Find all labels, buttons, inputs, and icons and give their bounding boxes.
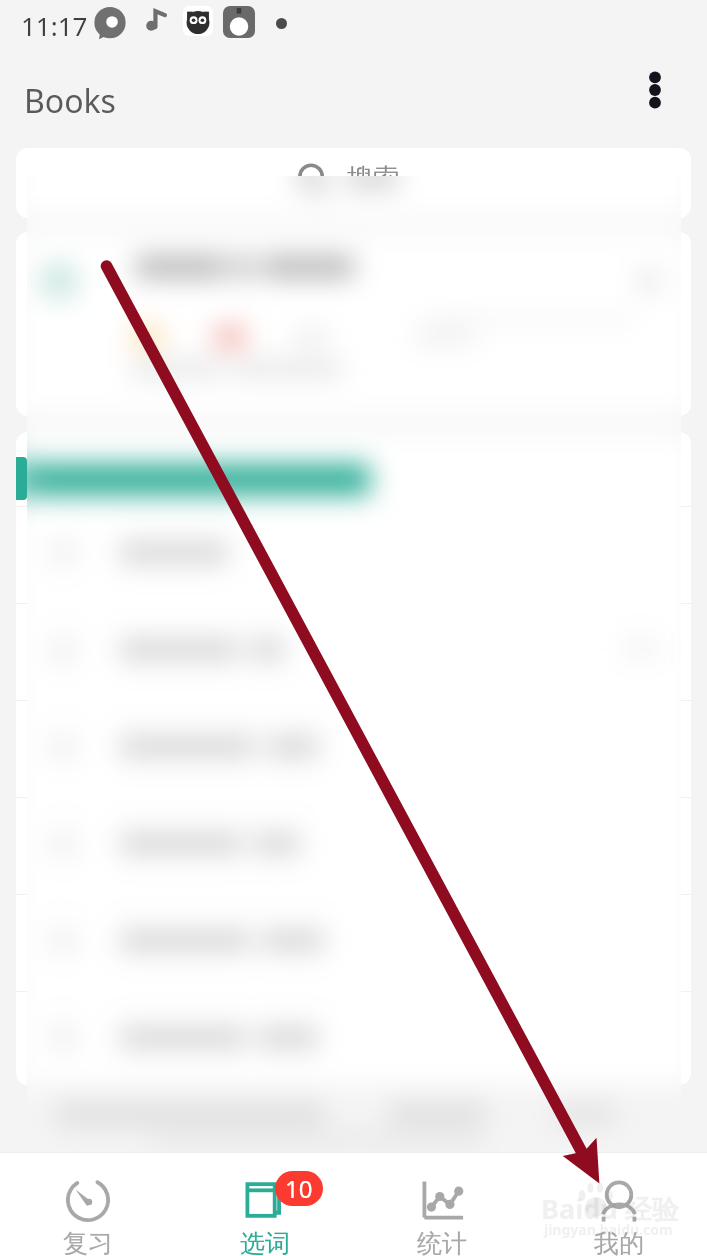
button[interactable] xyxy=(16,507,691,603)
staticText: Books xyxy=(24,79,116,123)
button[interactable]: 复习 xyxy=(0,1152,176,1256)
staticText: 10 xyxy=(285,1172,313,1205)
button[interactable]: 统计 xyxy=(353,1152,530,1256)
button[interactable] xyxy=(16,604,691,700)
staticText: 我的 xyxy=(594,1228,644,1256)
staticText: Baidu 经验 xyxy=(541,1190,679,1227)
button[interactable] xyxy=(16,992,691,1085)
button[interactable] xyxy=(16,798,691,894)
staticText: 11:17 xyxy=(21,8,88,43)
button[interactable]: More options xyxy=(631,66,679,114)
staticText: 搜索 xyxy=(347,162,399,195)
button[interactable] xyxy=(16,701,691,797)
button[interactable] xyxy=(16,798,691,894)
button[interactable] xyxy=(16,992,691,1085)
button[interactable]: More options xyxy=(631,66,679,114)
staticText: 统计 xyxy=(417,1228,467,1256)
button[interactable] xyxy=(16,432,691,506)
button[interactable] xyxy=(16,232,691,416)
button[interactable] xyxy=(16,604,691,700)
button[interactable] xyxy=(16,895,691,991)
button[interactable] xyxy=(16,895,691,991)
button[interactable]: 10 xyxy=(176,1152,353,1256)
button[interactable] xyxy=(16,232,691,416)
staticText: 选词 xyxy=(240,1228,290,1256)
button[interactable]: 搜索 xyxy=(16,148,691,218)
staticText: 搜索 xyxy=(347,162,399,195)
staticText: 11:17 xyxy=(21,8,88,43)
button[interactable]: 我的 xyxy=(530,1152,707,1256)
staticText: Books xyxy=(24,79,116,123)
button[interactable] xyxy=(16,432,691,506)
button[interactable]: 搜索 xyxy=(16,148,691,218)
button[interactable] xyxy=(16,507,691,603)
button[interactable] xyxy=(16,701,691,797)
staticText: 复习 xyxy=(63,1228,113,1256)
staticText: jingyan.baidu.com xyxy=(544,1220,673,1239)
